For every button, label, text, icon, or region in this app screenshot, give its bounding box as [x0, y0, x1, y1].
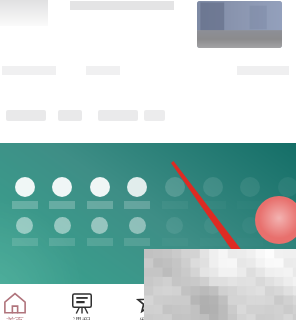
button[interactable]: 发现	[115, 286, 181, 320]
button[interactable]: Shortcut	[278, 177, 296, 197]
button[interactable]: Article image	[197, 1, 282, 48]
button[interactable]: Shortcut	[166, 217, 183, 234]
button[interactable]: 首页	[0, 286, 48, 320]
button[interactable]: Shortcut	[242, 217, 259, 234]
button[interactable]: Shortcut	[203, 177, 223, 197]
button[interactable]: 课程	[49, 286, 115, 320]
staticText: 首页	[6, 315, 24, 320]
staticText: 发现	[139, 315, 157, 320]
button[interactable]: Shortcut	[90, 177, 110, 197]
staticText: 我的	[273, 315, 291, 320]
button[interactable]: Shortcut	[54, 217, 71, 234]
button[interactable]: Shortcut	[127, 177, 147, 197]
button[interactable]: 消息	[182, 286, 248, 320]
button[interactable]: 我的	[249, 286, 296, 320]
button[interactable]: Add note	[255, 196, 296, 244]
button[interactable]: Shortcut	[279, 217, 296, 234]
staticText: 课程	[73, 315, 91, 320]
button[interactable]: Shortcut	[91, 217, 108, 234]
button[interactable]: Shortcut	[129, 217, 146, 234]
button[interactable]: Shortcut	[15, 177, 35, 197]
button[interactable]: Shortcut	[52, 177, 72, 197]
button[interactable]: Shortcut	[16, 217, 33, 234]
button[interactable]: Shortcut	[165, 177, 185, 197]
button[interactable]: Shortcut	[204, 217, 221, 234]
staticText: 消息	[206, 315, 224, 320]
button[interactable]: Shortcut	[240, 177, 260, 197]
